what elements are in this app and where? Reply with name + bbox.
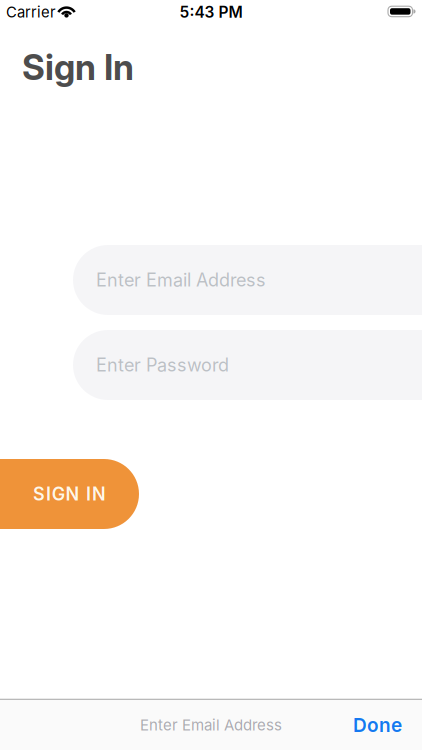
staticText: Enter Email Address (96, 269, 266, 291)
button[interactable]: SIGN IN (0, 459, 139, 529)
staticText: Enter Password (96, 354, 229, 376)
staticText: Carrier (6, 3, 56, 21)
button[interactable]: Done (353, 713, 402, 736)
button[interactable]: Enter Password (73, 330, 422, 400)
button[interactable]: Enter Email Address (73, 245, 422, 315)
staticText: Done (353, 713, 402, 736)
staticText: 5:43 PM (179, 3, 242, 21)
staticText: Sign In (22, 46, 134, 88)
staticText: SIGN IN (33, 483, 106, 505)
staticText: Enter Email Address (140, 716, 282, 734)
